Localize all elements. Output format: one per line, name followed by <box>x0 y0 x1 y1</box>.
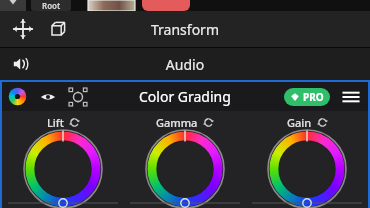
button[interactable]: PRO <box>284 88 330 106</box>
button[interactable]: 3D Box <box>48 19 68 39</box>
button[interactable]: Move <box>0 11 370 47</box>
staticText: Root <box>42 0 61 11</box>
staticText: Transform <box>0 20 370 39</box>
staticText: Lift <box>47 115 64 130</box>
button[interactable]: Audio <box>0 48 370 80</box>
button[interactable]: Root <box>31 0 71 11</box>
button[interactable] <box>0 0 26 11</box>
button[interactable]: Audio <box>11 54 31 74</box>
staticText: PRO <box>303 90 324 104</box>
button[interactable]: Gamma <box>124 111 246 133</box>
button[interactable]: Lift <box>2 111 124 133</box>
staticText: Color Grading <box>139 87 231 106</box>
button[interactable]: Menu <box>342 88 360 106</box>
button[interactable] <box>88 0 135 11</box>
button[interactable]: Color wheel control <box>246 133 368 208</box>
staticText: Gain <box>287 115 312 130</box>
staticText: Audio <box>0 55 370 74</box>
button[interactable]: Toggle visibility <box>39 88 57 106</box>
button[interactable]: Color wheel <box>8 87 27 106</box>
staticText: Gamma <box>156 115 198 130</box>
button[interactable]: Color wheel control <box>124 133 246 208</box>
button[interactable]: Color wheel control <box>2 133 124 208</box>
button[interactable] <box>142 0 190 11</box>
button[interactable]: Move <box>12 18 34 40</box>
button[interactable]: Transform handles <box>69 88 87 106</box>
button[interactable]: Gain <box>246 111 368 133</box>
